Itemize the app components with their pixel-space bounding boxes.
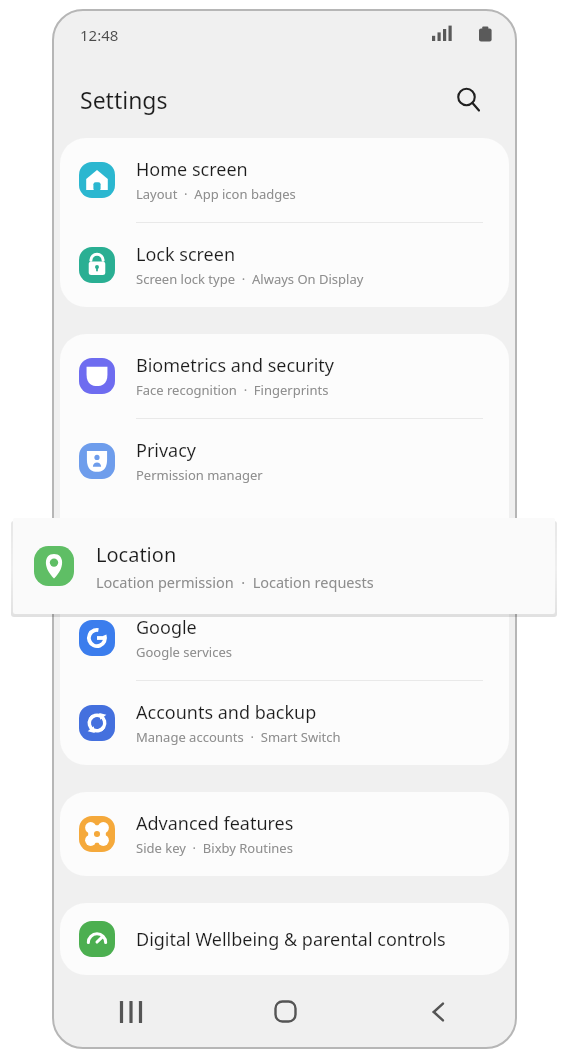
staticText: Digital Wellbeing & parental controls (136, 927, 446, 952)
button[interactable]: Google (60, 596, 509, 680)
staticText: Google services (136, 643, 232, 661)
button[interactable]: Accounts and backup (60, 681, 509, 765)
staticText: 12:48 (80, 25, 119, 45)
staticText: Home screen (136, 157, 248, 182)
staticText: Settings (80, 84, 168, 115)
staticText: Accounts and backup (136, 700, 317, 725)
staticText: Google (136, 615, 197, 640)
button[interactable]: Advanced features (60, 792, 509, 876)
button[interactable]: Back (362, 975, 516, 1048)
button[interactable]: Home screen (60, 138, 509, 222)
staticText: Side key · Bixby Routines (136, 839, 293, 857)
staticText: Location permission · Location requests (96, 572, 374, 592)
staticText: Advanced features (136, 811, 294, 836)
staticText: Permission manager (136, 466, 263, 484)
button[interactable]: Digital Wellbeing & parental controls (60, 903, 509, 975)
button[interactable]: Search (448, 79, 488, 119)
button[interactable]: Location (13, 518, 555, 614)
button[interactable]: Home (208, 975, 362, 1048)
staticText: Manage accounts · Smart Switch (136, 728, 341, 746)
staticText: Layout · App icon badges (136, 185, 296, 203)
button[interactable]: Lock screen (60, 223, 509, 307)
staticText: Location (96, 541, 177, 568)
button[interactable]: Recent apps (53, 975, 208, 1048)
button[interactable]: Biometrics and security (60, 334, 509, 418)
staticText: Lock screen (136, 242, 236, 267)
staticText: Screen lock type · Always On Display (136, 270, 364, 288)
staticText: Privacy (136, 438, 197, 463)
button[interactable]: Privacy (60, 419, 509, 503)
staticText: Face recognition · Fingerprints (136, 381, 329, 399)
staticText: Biometrics and security (136, 353, 334, 378)
